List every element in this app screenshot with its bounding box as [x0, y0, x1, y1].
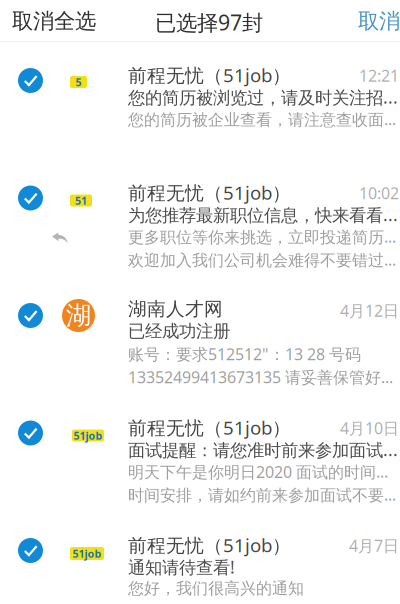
staticText: 5 — [75, 75, 81, 89]
button[interactable]: 51job — [0, 394, 400, 512]
staticText: 前程无忧（51job） — [128, 415, 291, 440]
staticText: 湖 — [66, 300, 91, 331]
staticText: 4月12日 — [340, 300, 399, 321]
staticText: 欢迎加入我们公司机会难得不要错过了 — [128, 249, 399, 270]
staticText: 账号：要求512512"：13 28 号码 — [128, 343, 361, 365]
staticText: 51job — [72, 546, 101, 561]
staticText: 前程无忧（51job） — [128, 180, 291, 205]
staticText: 10:02 — [359, 182, 399, 204]
staticText: 前程无忧（51job） — [128, 532, 291, 557]
staticText: 时间安排，请如约前来参加面试不要迟到 — [128, 484, 399, 505]
staticText: 明天下午是你明日2020 面试的时间安排 — [128, 461, 399, 482]
staticText: 您好，我们很高兴的通知 — [128, 578, 304, 598]
button[interactable]: 51job — [0, 512, 400, 604]
staticText: 面试提醒：请您准时前来参加面试活动 — [128, 438, 399, 461]
staticText: 4月10日 — [340, 417, 399, 439]
staticText: 通知请待查看! — [128, 555, 235, 578]
staticText: 湖南人才网 — [128, 297, 223, 320]
staticText: 取消 — [358, 8, 400, 34]
staticText: 12:21 — [359, 65, 399, 86]
button[interactable]: 51 — [0, 159, 400, 277]
staticText: 您的简历被企业查看，请注意查收面试邀请 — [128, 108, 399, 130]
staticText: 更多职位等你来挑选，立即投递简历吧 — [128, 226, 399, 247]
staticText: 取消全选 — [12, 8, 96, 34]
staticText: 前程无忧（51job） — [128, 62, 291, 87]
staticText: 已经成功注册 — [128, 320, 230, 342]
staticText: 为您推荐最新职位信息，快来看看吧 — [128, 203, 399, 226]
button[interactable]: 取消全选 — [12, 8, 96, 34]
staticText: 13352499413673135 请妥善保管好账号 — [128, 366, 399, 388]
button[interactable]: 取消 — [358, 8, 400, 34]
staticText: 4月7日 — [349, 535, 399, 556]
staticText: 您的简历被浏览过，请及时关注招聘信息通知 — [128, 85, 399, 109]
staticText: 51 — [75, 193, 87, 208]
staticText: 已选择97封 — [155, 8, 263, 36]
staticText: 51job — [73, 428, 102, 443]
button[interactable]: 湖 — [0, 277, 400, 394]
button[interactable]: 5 — [0, 42, 400, 159]
